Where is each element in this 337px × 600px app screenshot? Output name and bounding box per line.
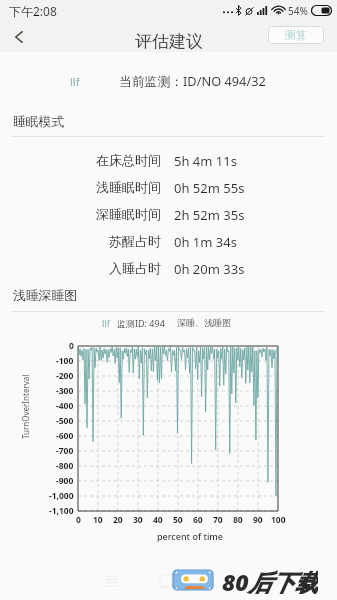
staticText: 90 xyxy=(253,514,263,526)
staticText: 0 xyxy=(69,340,74,352)
staticText: 浅睡深睡图 xyxy=(13,288,77,304)
staticText: TurnOverInterval xyxy=(20,374,31,439)
staticText: 0h 1m 34s xyxy=(174,233,237,251)
staticText: 5h 4m 11s xyxy=(174,152,237,170)
staticText: 在床总时间 xyxy=(96,152,161,168)
staticText: 2h 52m 35s xyxy=(174,206,245,224)
staticText: 10 xyxy=(93,514,103,526)
staticText: 100 xyxy=(271,514,286,526)
staticText: 深睡眠时间 xyxy=(96,206,161,222)
staticText: -500 xyxy=(56,415,74,427)
staticText: -700 xyxy=(56,445,74,457)
staticText: -400 xyxy=(56,400,74,412)
staticText: 54% xyxy=(288,4,308,18)
staticText: -900 xyxy=(56,475,74,487)
staticText: 睡眠模式 xyxy=(13,114,65,130)
staticText: 30 xyxy=(133,514,143,526)
staticText: -600 xyxy=(56,430,74,442)
staticText: 60 xyxy=(193,514,203,526)
staticText: -100 xyxy=(56,355,74,367)
staticText: 苏醒占时 xyxy=(109,233,161,249)
button[interactable]: Back xyxy=(4,22,34,52)
staticText: 0h 20m 33s xyxy=(174,260,245,278)
staticText: 70 xyxy=(213,514,223,526)
staticText: 入睡占时 xyxy=(109,260,161,276)
staticText: 评估建议 xyxy=(135,31,203,52)
staticText: -800 xyxy=(56,460,74,472)
staticText: 浅睡眠时间 xyxy=(96,179,161,195)
staticText: percent of time xyxy=(157,530,224,542)
staticText: -1,000 xyxy=(49,490,74,502)
staticText: llf xyxy=(102,317,110,329)
button[interactable]: Home xyxy=(155,570,177,592)
staticText: -200 xyxy=(56,370,74,382)
staticText: 80后下载 xyxy=(222,566,318,594)
staticText: 40 xyxy=(153,514,163,526)
staticText: llf xyxy=(70,74,80,89)
button[interactable]: 测算 xyxy=(268,26,324,44)
staticText: 监测ID: 494 xyxy=(117,317,165,329)
staticText: 80 xyxy=(233,514,243,526)
staticText: 20 xyxy=(113,514,123,526)
staticText: 当前监测：ID/NO 494/32 xyxy=(119,72,266,89)
staticText: 50 xyxy=(173,514,183,526)
staticText: -1,100 xyxy=(49,505,74,517)
staticText: 0h 52m 55s xyxy=(174,179,245,197)
staticText: 测算 xyxy=(285,28,307,42)
staticText: -300 xyxy=(56,385,74,397)
staticText: 0 xyxy=(76,514,81,526)
staticText: 深睡、浅睡图 xyxy=(177,317,231,328)
staticText: 下午2:08 xyxy=(9,3,57,19)
